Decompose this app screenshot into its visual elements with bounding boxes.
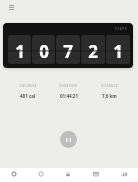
staticText: DURATION xyxy=(59,84,78,88)
button[interactable]: STEPS xyxy=(3,23,133,68)
button[interactable]: Pause xyxy=(60,131,77,148)
button[interactable]: Menu xyxy=(3,0,19,16)
button[interactable]: DURATION xyxy=(48,84,89,99)
staticText: 7.6 km xyxy=(102,93,117,99)
button[interactable]: Stats xyxy=(110,168,138,182)
staticText: 7 xyxy=(63,40,73,63)
button[interactable]: CALORIES xyxy=(8,84,48,99)
button[interactable]: Lock xyxy=(54,168,82,182)
staticText: 481 cal xyxy=(20,93,36,99)
staticText: 1 xyxy=(113,40,123,63)
button[interactable]: Calendar xyxy=(82,168,110,182)
staticText: 01:44:21 xyxy=(60,93,78,99)
button[interactable]: Settings xyxy=(0,168,27,182)
staticText: 2 xyxy=(88,40,98,63)
button[interactable]: DISTANCE xyxy=(89,84,130,99)
staticText: CALORIES xyxy=(20,84,37,88)
button[interactable]: Activity xyxy=(27,168,54,182)
staticText: DISTANCE xyxy=(101,84,119,88)
staticText: 1 xyxy=(15,40,25,63)
staticText: 0 xyxy=(39,40,49,63)
staticText: STEPS xyxy=(115,26,128,31)
